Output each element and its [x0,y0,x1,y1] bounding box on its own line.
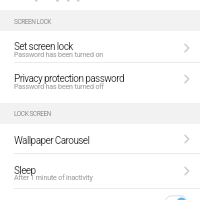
button[interactable]: Privacy protection password [0,62,200,103]
button[interactable]: Sleep [0,154,200,188]
staticText: Password has been turned on [14,51,104,59]
staticText: Password has been turned off [14,83,104,91]
staticText: Privacy protection password [14,73,124,85]
button[interactable]: Set screen lock [0,31,200,62]
staticText: Set screen lock [14,41,73,53]
staticText: Wallpaper Carousel [14,135,90,147]
button[interactable] [0,189,200,200]
staticText: After 1 minute of inactivity [14,174,93,182]
staticText: Sleep [14,165,36,177]
staticText: SCREEN LOCK [14,18,51,26]
button[interactable]: Wallpaper Carousel [0,124,200,153]
staticText: LOCK SCREEN [14,110,51,118]
